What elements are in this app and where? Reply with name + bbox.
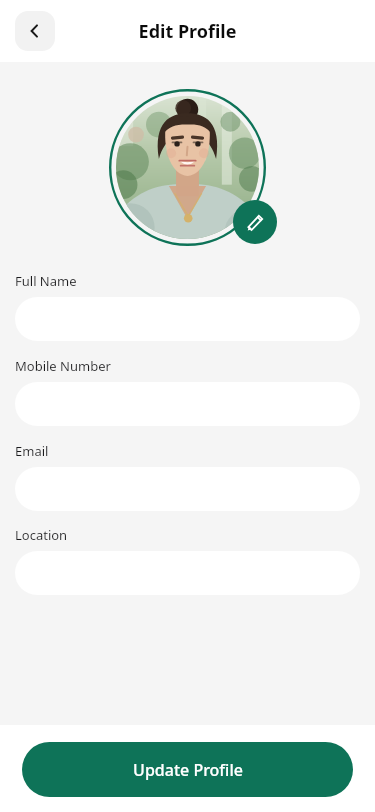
staticText: Full Name [15,272,77,290]
button[interactable]: Back [15,11,55,51]
staticText: Mobile Number [15,357,111,375]
staticText: Email [15,442,49,460]
staticText: Update Profile [133,759,243,781]
button[interactable]: Update Profile [22,742,353,797]
button[interactable]: Edit profile photo [233,200,277,244]
staticText: Edit Profile [0,19,375,44]
staticText: Location [15,526,68,544]
button[interactable]: Profile photo [116,96,259,239]
